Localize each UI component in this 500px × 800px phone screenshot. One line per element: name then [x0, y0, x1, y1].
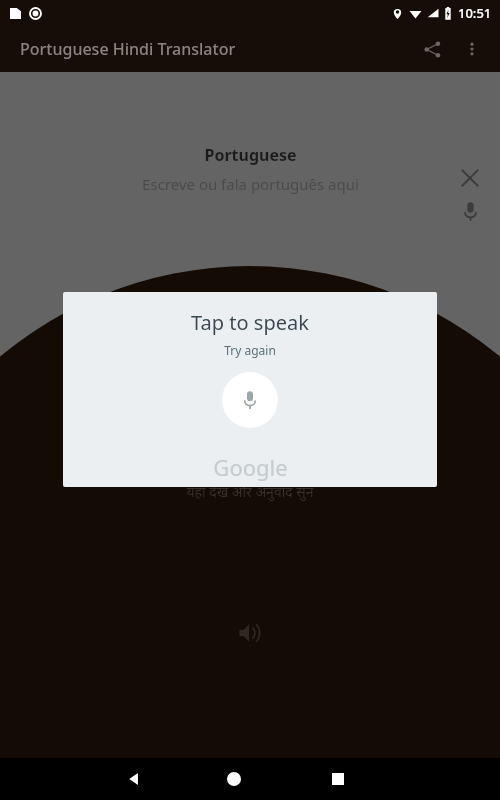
button[interactable]: Back	[110, 758, 158, 800]
staticText: 10:51	[458, 4, 492, 22]
button[interactable]: Home	[210, 758, 258, 800]
staticText: Portuguese	[204, 144, 297, 166]
staticText: Tap to speak	[191, 309, 309, 336]
staticText: Escreve ou fala português aqui	[142, 174, 359, 194]
button[interactable]: Recent apps	[314, 758, 362, 800]
button[interactable]: Tap to speak	[63, 292, 437, 487]
button[interactable]: More options	[452, 29, 492, 69]
button[interactable]: Play translation	[228, 611, 272, 655]
button[interactable]: Speak	[452, 193, 488, 229]
button[interactable]: Share	[412, 29, 452, 69]
staticText: Try again	[224, 342, 276, 358]
staticText: यहां देख और अनुवाद सुन	[186, 482, 314, 501]
staticText: Google	[213, 452, 288, 482]
staticText: Portuguese Hindi Translator	[20, 38, 236, 60]
button[interactable]: Tap to speak	[222, 372, 278, 428]
button[interactable]: Clear	[452, 160, 488, 196]
